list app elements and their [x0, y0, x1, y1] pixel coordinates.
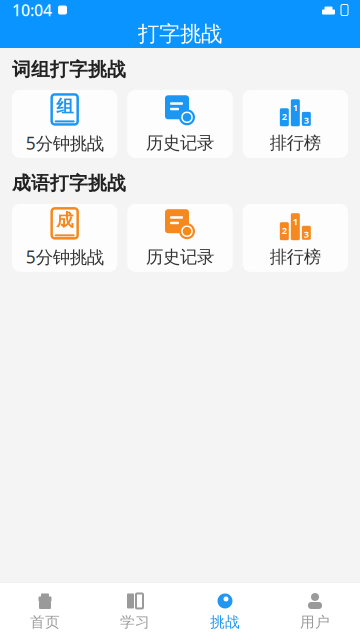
- staticText: 组: [56, 96, 73, 117]
- staticText: 2: [282, 110, 287, 123]
- staticText: 3: [304, 228, 309, 240]
- staticText: 成语打字挑战: [12, 172, 126, 195]
- staticText: 5分钟挑战: [26, 131, 104, 154]
- button[interactable]: 学习: [90, 587, 180, 636]
- button[interactable]: 成: [12, 204, 117, 272]
- staticText: 1: [293, 101, 298, 114]
- button[interactable]: 挑战: [180, 587, 270, 636]
- staticText: 学习: [120, 613, 150, 631]
- staticText: 排行榜: [270, 246, 321, 267]
- staticText: 5分钟挑战: [26, 245, 104, 268]
- button[interactable]: 历史记录: [127, 204, 233, 272]
- button[interactable]: 组: [12, 90, 117, 158]
- staticText: 打字挑战: [138, 21, 222, 47]
- button[interactable]: 用户: [270, 587, 360, 636]
- staticText: 1: [293, 215, 298, 228]
- staticText: 3: [304, 114, 309, 126]
- button[interactable]: 历史记录: [127, 90, 233, 158]
- button[interactable]: 2: [243, 204, 348, 272]
- staticText: 历史记录: [146, 246, 214, 267]
- staticText: 成: [56, 210, 73, 231]
- staticText: 2: [282, 224, 287, 237]
- staticText: 挑战: [210, 613, 240, 631]
- button[interactable]: 2: [243, 90, 348, 158]
- staticText: 用户: [300, 613, 330, 631]
- button[interactable]: 首页: [0, 587, 90, 636]
- staticText: 词组打字挑战: [12, 58, 126, 81]
- staticText: 历史记录: [146, 132, 214, 154]
- staticText: 排行榜: [270, 132, 321, 154]
- staticText: 首页: [30, 613, 60, 631]
- staticText: 10:04: [12, 0, 52, 21]
